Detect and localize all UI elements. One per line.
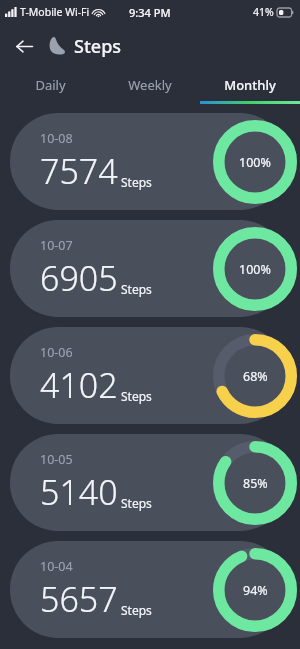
button[interactable]: Weekly — [100, 68, 200, 101]
staticText: 85% — [243, 475, 268, 492]
staticText: 68% — [243, 368, 268, 385]
button[interactable]: 10-08 — [0, 113, 300, 210]
staticText: 10-07 — [40, 237, 73, 254]
staticText: 7574 — [40, 148, 118, 194]
button[interactable]: Monthly — [200, 68, 300, 101]
staticText: T-Mobile Wi-Fi — [20, 5, 90, 19]
button[interactable]: Back — [6, 28, 42, 64]
staticText: 5657 — [40, 576, 118, 622]
button[interactable]: 10-06 — [0, 327, 300, 424]
staticText: 41% — [253, 5, 274, 19]
button[interactable]: 10-07 — [0, 220, 300, 317]
staticText: 5140 — [40, 469, 118, 515]
staticText: 10-05 — [40, 451, 73, 468]
staticText: 100% — [239, 261, 271, 278]
staticText: Weekly — [128, 76, 172, 94]
staticText: Steps — [121, 388, 152, 404]
staticText: 10-04 — [40, 558, 73, 575]
staticText: 94% — [243, 582, 268, 599]
staticText: 10-06 — [40, 344, 73, 361]
staticText: 9:34 PM — [129, 5, 171, 20]
staticText: 100% — [239, 154, 271, 171]
staticText: 4102 — [40, 362, 118, 408]
button[interactable]: 10-04 — [0, 541, 300, 638]
staticText: Monthly — [224, 76, 276, 94]
staticText: Steps — [121, 495, 152, 511]
button[interactable]: 10-05 — [0, 434, 300, 531]
staticText: Steps — [121, 281, 152, 297]
button[interactable]: Daily — [0, 68, 100, 101]
staticText: Steps — [121, 602, 152, 618]
staticText: Steps — [74, 34, 122, 59]
staticText: Daily — [35, 76, 66, 94]
staticText: 10-08 — [40, 130, 73, 147]
staticText: 6905 — [40, 255, 118, 301]
staticText: Steps — [121, 174, 152, 190]
